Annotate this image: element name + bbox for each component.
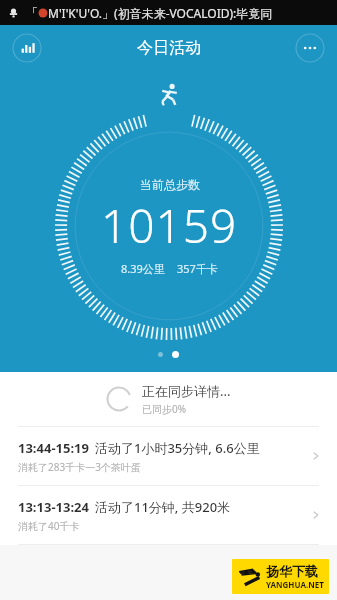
staticText: 消耗了40千卡 <box>18 519 80 533</box>
staticText: 活动了11分钟, 共920米 <box>95 498 231 516</box>
staticText: 正在同步详情... <box>142 382 231 400</box>
staticText: 13:44-15:19 <box>18 439 89 457</box>
button[interactable]: Statistics <box>12 33 42 63</box>
staticText: 扬华下载 <box>266 563 318 579</box>
button[interactable]: 正在同步详情... <box>0 372 337 427</box>
button[interactable]: 13:44-15:19 <box>0 427 337 486</box>
staticText: 活动了1小时35分钟, 6.6公里 <box>95 439 260 457</box>
button[interactable]: More options <box>295 33 325 63</box>
staticText: M'I'K'U'O.」(初音未来-VOCALOID):毕竟同 <box>48 5 273 21</box>
staticText: 「 <box>26 5 38 20</box>
staticText: YANGHUA.NET <box>266 579 324 590</box>
staticText: 已同步0% <box>142 402 187 416</box>
staticText: 当前总步数 <box>140 177 200 192</box>
button[interactable]: 13:13-13:24 <box>0 486 337 545</box>
staticText: 8.39公里 <box>121 261 165 276</box>
staticText: 357千卡 <box>177 261 218 276</box>
staticText: 今日活动 <box>137 38 201 58</box>
staticText: 消耗了283千卡一3个茶叶蛋 <box>18 460 141 474</box>
staticText: 13:13-13:24 <box>18 498 89 516</box>
staticText: 10159 <box>101 194 238 257</box>
